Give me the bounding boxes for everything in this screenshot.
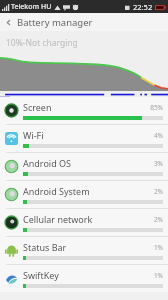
staticText: Android OS xyxy=(23,157,153,169)
other: Back xyxy=(5,19,12,26)
staticText: Wi-Fi xyxy=(23,129,153,141)
button[interactable]: Cellular network xyxy=(0,209,168,236)
staticText: 1% xyxy=(153,271,163,280)
button[interactable]: Back xyxy=(0,13,168,31)
staticText: Android System xyxy=(23,185,153,197)
button[interactable]: Wi-Fi xyxy=(0,125,168,152)
staticText: Cellular network xyxy=(23,213,153,225)
staticText: 85% xyxy=(150,103,163,112)
staticText: 2% xyxy=(153,187,163,196)
staticText: Status Bar xyxy=(23,241,153,253)
staticText: 1% xyxy=(153,243,163,252)
button[interactable]: Android OS xyxy=(0,153,168,180)
button[interactable]: Screen xyxy=(0,97,168,124)
staticText: 4% xyxy=(153,131,163,140)
button[interactable]: Android System xyxy=(0,181,168,208)
staticText: 10%-Not charging xyxy=(6,37,78,49)
staticText: 3% xyxy=(153,159,163,168)
staticText: Screen xyxy=(23,101,150,113)
staticText: Battery manager xyxy=(17,16,93,29)
staticText: Telekom HU xyxy=(11,2,52,12)
button[interactable]: SwiftKey xyxy=(0,265,168,292)
button[interactable]: Status Bar xyxy=(0,237,168,264)
staticText: 22:52 xyxy=(133,2,153,12)
staticText: 2% xyxy=(153,215,163,224)
staticText: SwiftKey xyxy=(23,269,153,281)
